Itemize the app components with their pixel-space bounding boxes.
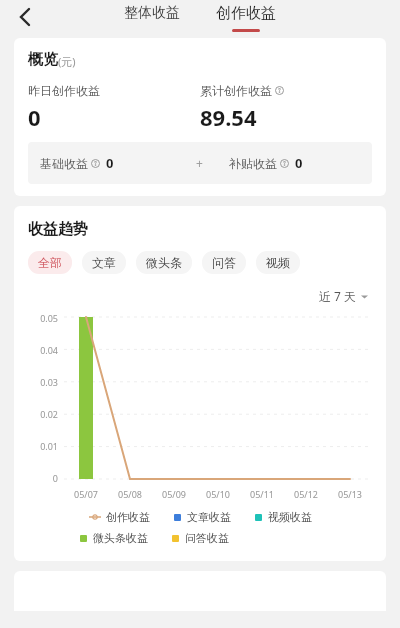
staticText: + (196, 155, 203, 171)
staticText: 全部 (38, 255, 62, 270)
button[interactable]: 创作收益 (89, 510, 150, 524)
button[interactable]: 整体收益 (118, 4, 186, 22)
staticText: 05/13 (338, 488, 362, 500)
button[interactable]: 微头条 (136, 251, 192, 274)
button[interactable]: Back (8, 2, 42, 36)
staticText: 问答 (212, 255, 236, 270)
staticText: 0.01 (40, 440, 58, 452)
staticText: 0 (295, 154, 303, 172)
staticText: 05/12 (294, 488, 318, 500)
staticText: 创作收益 (106, 510, 150, 524)
staticText: 0.04 (40, 344, 58, 356)
button[interactable]: 问答收益 (172, 531, 229, 545)
staticText: 创作收益 (216, 4, 276, 23)
staticText: 微头条 (146, 255, 182, 270)
button[interactable]: 视频收益 (255, 510, 312, 524)
staticText: 视频收益 (268, 510, 312, 524)
staticText: 整体收益 (124, 4, 180, 22)
button[interactable]: 基础收益 (28, 142, 372, 184)
staticText: 文章 (92, 255, 116, 270)
button[interactable]: 创作收益 (210, 4, 282, 32)
staticText: 0 (28, 102, 41, 132)
button[interactable]: 文章 (82, 251, 126, 274)
staticText: 0.05 (40, 312, 58, 324)
staticText: 近 7 天 (319, 288, 357, 304)
button[interactable]: 文章收益 (174, 510, 231, 524)
button[interactable]: 全部 (28, 251, 72, 274)
staticText: 05/10 (206, 488, 230, 500)
staticText: 微头条收益 (93, 531, 148, 545)
staticText: 0 (106, 154, 114, 172)
button[interactable]: 微头条收益 (80, 531, 148, 545)
staticText: 累计创作收益 (200, 83, 272, 98)
staticText: 05/09 (162, 488, 186, 500)
staticText: 89.54 (200, 102, 257, 132)
staticText: 收益趋势 (28, 220, 88, 239)
staticText: 05/11 (250, 488, 274, 500)
staticText: 05/08 (118, 488, 142, 500)
staticText: 补贴收益 (229, 156, 277, 171)
staticText: 概览 (28, 50, 58, 69)
staticText: (元) (58, 54, 76, 69)
button[interactable]: 问答 (202, 251, 246, 274)
button[interactable]: 视频 (256, 251, 300, 274)
staticText: 视频 (266, 255, 290, 270)
staticText: 基础收益 (40, 156, 88, 171)
staticText: 05/07 (74, 488, 98, 500)
button[interactable]: 近 7 天 (315, 286, 372, 306)
staticText: 0 (52, 472, 58, 484)
staticText: 问答收益 (185, 531, 229, 545)
staticText: 昨日创作收益 (28, 83, 100, 98)
staticText: 0.02 (40, 408, 58, 420)
staticText: 0.03 (40, 376, 58, 388)
staticText: 文章收益 (187, 510, 231, 524)
